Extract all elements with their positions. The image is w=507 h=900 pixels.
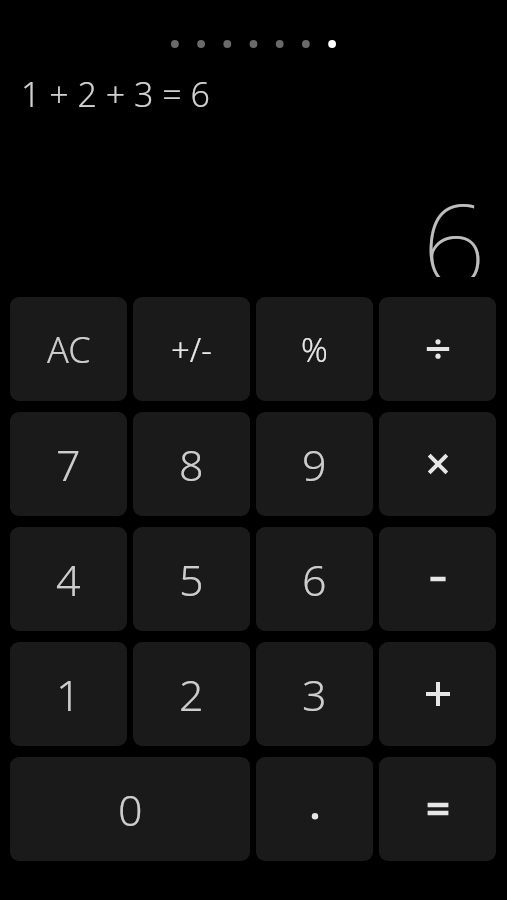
button[interactable]: AC	[10, 297, 127, 401]
staticText: 7	[56, 435, 81, 494]
staticText: 0	[118, 780, 143, 839]
button[interactable]: 4	[10, 527, 127, 631]
staticText: 3	[302, 665, 327, 724]
staticText: 2	[179, 665, 204, 724]
button[interactable]: +/-	[133, 297, 250, 401]
button[interactable]: Equals	[379, 757, 496, 861]
button[interactable]: Decimal point	[256, 757, 373, 861]
staticText: +/-	[171, 327, 212, 372]
staticText: AC	[47, 325, 91, 374]
staticText: 4	[56, 550, 81, 609]
staticText: 9	[302, 435, 327, 494]
button[interactable]: 1	[10, 642, 127, 746]
button[interactable]: 5	[133, 527, 250, 631]
button[interactable]: 9	[256, 412, 373, 516]
button[interactable]: Divide	[379, 297, 496, 401]
staticText: 6	[422, 165, 486, 277]
staticText: %	[301, 327, 328, 372]
button[interactable]: Multiply	[379, 412, 496, 516]
staticText: 1 + 2 + 3 = 6	[21, 71, 210, 117]
button[interactable]: 2	[133, 642, 250, 746]
staticText: 1	[56, 665, 81, 724]
staticText: 6	[302, 550, 327, 609]
button[interactable]: Plus	[379, 642, 496, 746]
button[interactable]: %	[256, 297, 373, 401]
button[interactable]: 3	[256, 642, 373, 746]
button[interactable]: Minus	[379, 527, 496, 631]
button[interactable]: 8	[133, 412, 250, 516]
staticText: 8	[179, 435, 204, 494]
button[interactable]: 6	[256, 527, 373, 631]
staticText: 5	[179, 550, 204, 609]
button[interactable]: 7	[10, 412, 127, 516]
button[interactable]: 0	[10, 757, 250, 861]
